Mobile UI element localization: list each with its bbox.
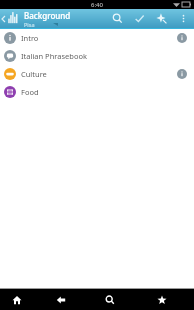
button[interactable]: Navigate up <box>0 9 21 28</box>
staticText: Italian Phrasebook <box>21 51 87 61</box>
staticText: Background <box>24 10 71 21</box>
button[interactable]: Home <box>0 289 33 310</box>
button[interactable]: Search <box>106 9 128 28</box>
button[interactable]: Italian Phrasebook <box>0 47 194 65</box>
button[interactable]: Mark done <box>128 9 150 28</box>
button[interactable]: Background <box>24 9 106 28</box>
button[interactable]: Food <box>0 83 194 101</box>
staticText: Culture <box>21 69 47 79</box>
staticText: 6:40 <box>91 1 103 9</box>
button[interactable]: Search <box>89 289 130 310</box>
button[interactable]: Back <box>33 289 89 310</box>
staticText: Intro <box>21 33 39 43</box>
button[interactable]: Culture <box>0 65 194 83</box>
staticText: Food <box>21 87 39 97</box>
button[interactable]: Info about Intro <box>174 30 190 46</box>
button[interactable]: Highlights <box>150 9 172 28</box>
staticText: Pisa <box>24 21 35 28</box>
button[interactable]: Favorites <box>130 289 194 310</box>
button[interactable]: More options <box>172 9 194 28</box>
button[interactable]: Intro <box>0 29 194 47</box>
button[interactable]: Info about Culture <box>174 66 190 82</box>
